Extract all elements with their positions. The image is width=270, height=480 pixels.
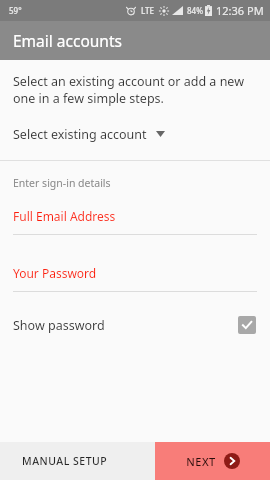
other: Show password checkbox xyxy=(238,316,256,334)
staticText: NEXT xyxy=(186,454,216,469)
staticText: 84% xyxy=(187,5,203,16)
staticText: LTE xyxy=(141,5,155,16)
staticText: Show password xyxy=(13,317,105,334)
button[interactable]: Show password xyxy=(0,310,270,340)
staticText: MANUAL SETUP xyxy=(22,454,108,468)
button[interactable]: Select existing account xyxy=(0,120,270,148)
button[interactable]: MANUAL SETUP xyxy=(0,442,155,480)
staticText: Your Password xyxy=(13,265,97,281)
staticText: 59° xyxy=(9,5,22,16)
staticText: 12:36 PM xyxy=(216,3,264,18)
staticText: Email accounts xyxy=(13,30,122,51)
staticText: Enter sign-in details xyxy=(13,176,111,190)
staticText: Select existing account xyxy=(13,126,147,143)
staticText: Select an existing account or add a new … xyxy=(13,73,244,107)
button[interactable]: NEXT xyxy=(155,442,270,480)
staticText: Full Email Address xyxy=(13,208,116,224)
